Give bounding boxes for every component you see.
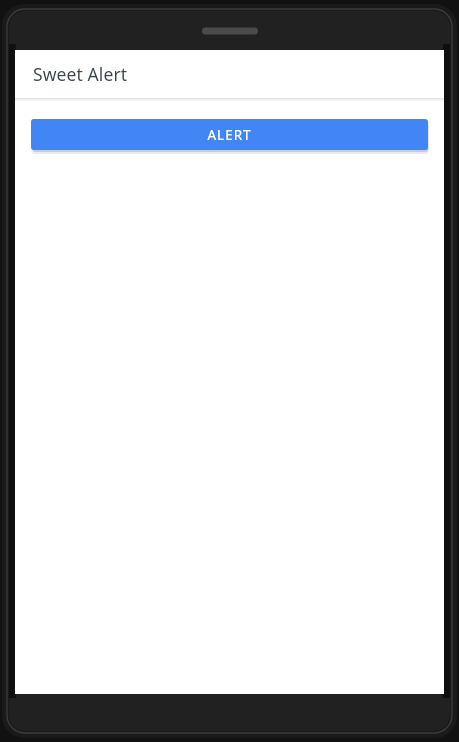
staticText: ALERT	[207, 126, 252, 144]
staticText: Sweet Alert	[33, 62, 128, 86]
button[interactable]: Alert	[31, 119, 428, 150]
